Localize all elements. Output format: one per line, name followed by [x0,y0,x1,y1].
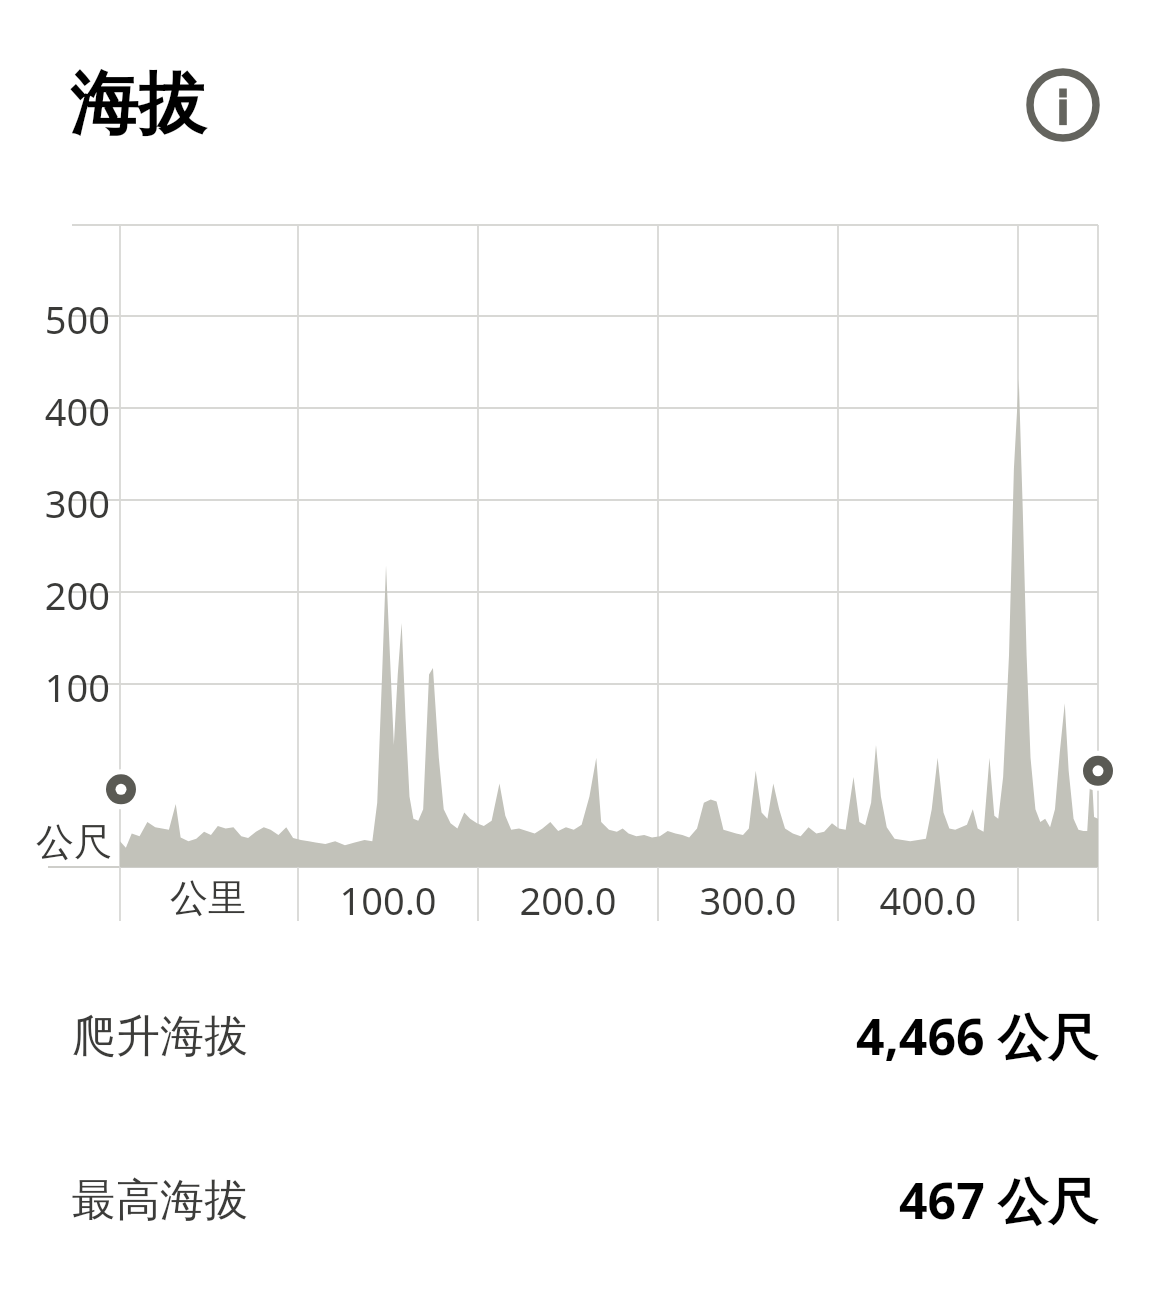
staticText: 100 [44,661,110,713]
staticText: 100.0 [339,874,437,926]
staticText: 200.0 [519,874,617,926]
staticText: 海拔 [70,62,206,148]
button[interactable]: Info [1019,61,1107,149]
staticText: 500 [44,293,110,345]
staticText: 爬升海拔 [72,1009,248,1064]
staticText: 400 [44,385,110,437]
button[interactable]: 最高海拔 [0,1158,1170,1242]
staticText: 200 [44,569,110,621]
staticText: 400.0 [879,874,977,926]
staticText: 4,466 公尺 [856,1002,1098,1070]
staticText: 467 公尺 [899,1166,1098,1234]
staticText: 300 [44,477,110,529]
staticText: 最高海拔 [72,1173,248,1228]
staticText: 公里 [170,874,246,922]
button[interactable]: 爬升海拔 [0,994,1170,1078]
staticText: 300.0 [699,874,797,926]
staticText: 公尺 [36,818,112,866]
